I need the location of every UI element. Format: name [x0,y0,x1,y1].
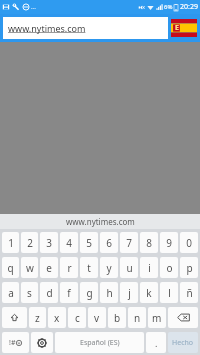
button[interactable]: w [21,257,38,278]
staticText: x [54,311,60,325]
staticText: ñ [186,286,193,300]
staticText: g [86,286,93,300]
staticText: w [26,261,34,275]
staticText: 3 [46,236,52,250]
staticText: r [67,261,72,275]
staticText: E [175,23,179,33]
staticText: v [94,311,100,325]
button[interactable]: p [180,257,198,278]
staticText: ... [31,3,36,11]
button[interactable]: t [80,257,98,278]
button[interactable]: b [108,307,126,328]
staticText: o [166,261,173,275]
button[interactable]: n [128,307,146,328]
staticText: 6 [106,236,112,250]
staticText: 8 [146,236,152,250]
button[interactable]: Español (ES) [55,332,144,353]
button[interactable]: a [2,282,19,303]
staticText: n [134,311,141,325]
button[interactable]: Hecho [168,332,198,353]
staticText: 6% [164,3,173,11]
button[interactable]: z [29,307,46,328]
button[interactable]: l [160,282,178,303]
staticText: e [46,261,52,275]
staticText: 2 [27,236,33,250]
staticText: . [155,337,158,349]
button[interactable]: Idioma Español [171,19,197,37]
button[interactable]: r [60,257,78,278]
staticText: Español (ES) [80,338,120,348]
staticText: m [152,311,162,325]
staticText: f [67,286,71,300]
staticText: www.nytimes.com [66,216,135,227]
button[interactable]: i [140,257,158,278]
button[interactable]: s [21,282,38,303]
button[interactable]: c [68,307,86,328]
staticText: h [106,286,113,300]
button[interactable]: h [100,282,118,303]
staticText: 4 [66,236,72,250]
staticText: b [114,311,121,325]
button[interactable]: 6 [100,232,118,253]
button[interactable]: 2 [21,232,38,253]
button[interactable]: Símbolos y emoji [2,332,29,353]
button[interactable]: g [80,282,98,303]
button[interactable]: m [148,307,166,328]
staticText: 5 [86,236,92,250]
button[interactable]: Borrar [168,307,198,328]
button[interactable]: e [40,257,58,278]
button[interactable]: o [160,257,178,278]
staticText: z [35,311,40,325]
staticText: t [87,261,91,275]
button[interactable]: d [40,282,58,303]
staticText: d [46,286,53,300]
button[interactable]: . [146,332,166,353]
button[interactable]: v [88,307,106,328]
staticText: a [8,286,14,300]
staticText: 1 [8,236,14,250]
staticText: www.nytimes.com [8,22,86,34]
button[interactable]: www.nytimes.com [3,17,168,39]
staticText: y [106,261,112,275]
button[interactable]: Mayúsculas [2,307,27,328]
button[interactable]: f [60,282,78,303]
staticText: j [128,286,131,300]
button[interactable]: 3 [40,232,58,253]
button[interactable]: 4 [60,232,78,253]
staticText: 7 [126,236,132,250]
button[interactable]: q [2,257,19,278]
button[interactable]: k [140,282,158,303]
staticText: p [186,261,193,275]
button[interactable]: x [48,307,66,328]
staticText: 9 [166,236,172,250]
button[interactable]: ñ [180,282,198,303]
button[interactable]: Ajustes [31,332,53,353]
staticText: l [168,286,171,300]
staticText: k [146,286,152,300]
button[interactable]: 1 [2,232,19,253]
staticText: s [27,286,32,300]
staticText: !# [9,338,16,348]
staticText: 0 [186,236,192,250]
button[interactable]: j [120,282,138,303]
button[interactable]: 0 [180,232,198,253]
staticText: i [148,261,151,275]
button[interactable]: u [120,257,138,278]
button[interactable]: www.nytimes.com [0,214,200,229]
staticText: u [126,261,133,275]
staticText: Hecho [172,338,194,348]
staticText: 20:29 [180,2,198,12]
button[interactable]: 9 [160,232,178,253]
button[interactable]: 7 [120,232,138,253]
staticText: c [75,311,80,325]
button[interactable]: y [100,257,118,278]
staticText: q [7,261,14,275]
button[interactable]: 8 [140,232,158,253]
button[interactable]: 5 [80,232,98,253]
